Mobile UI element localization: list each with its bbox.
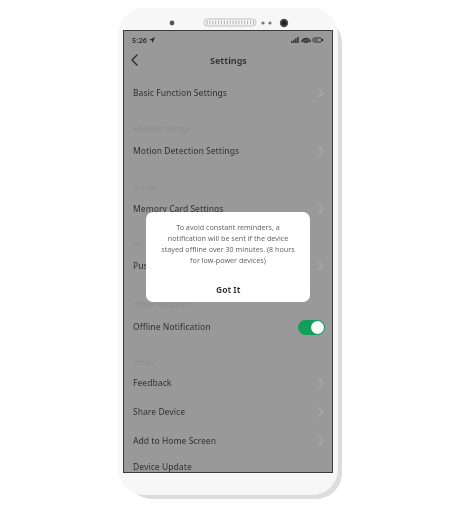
button[interactable]: Push Notification bbox=[124, 255, 332, 277]
button[interactable]: Motion Detection Settings bbox=[124, 140, 332, 162]
button[interactable]: Add to Home Screen bbox=[124, 430, 332, 452]
staticText: Feedback bbox=[133, 377, 172, 389]
staticText: Offline Notification bbox=[133, 300, 332, 309]
staticText: Settings bbox=[210, 54, 247, 66]
staticText: Push Notification bbox=[133, 260, 203, 272]
staticText: VAS bbox=[133, 240, 332, 249]
staticText: To avoid constant reminders, a notificat… bbox=[157, 222, 299, 265]
staticText: Got It bbox=[216, 284, 241, 296]
staticText: Basic Function Settings bbox=[133, 87, 227, 99]
staticText: Share Device bbox=[133, 406, 186, 418]
staticText: Offline Notification bbox=[133, 321, 211, 333]
staticText: Motion Detection Settings bbox=[133, 145, 240, 157]
staticText: Memory Card Settings bbox=[133, 203, 224, 215]
button[interactable]: Basic Function Settings bbox=[124, 82, 332, 104]
button[interactable]: Got It bbox=[146, 278, 310, 302]
button[interactable]: Back bbox=[124, 50, 144, 70]
button[interactable]: Feedback bbox=[124, 372, 332, 394]
button[interactable]: Memory Card Settings bbox=[124, 198, 332, 220]
button[interactable]: Offline Notification bbox=[124, 316, 332, 338]
staticText: Add to Home Screen bbox=[133, 435, 217, 447]
staticText: Device Update bbox=[133, 461, 192, 472]
button[interactable]: Share Device bbox=[124, 401, 332, 423]
staticText: 5:26 bbox=[132, 35, 147, 45]
